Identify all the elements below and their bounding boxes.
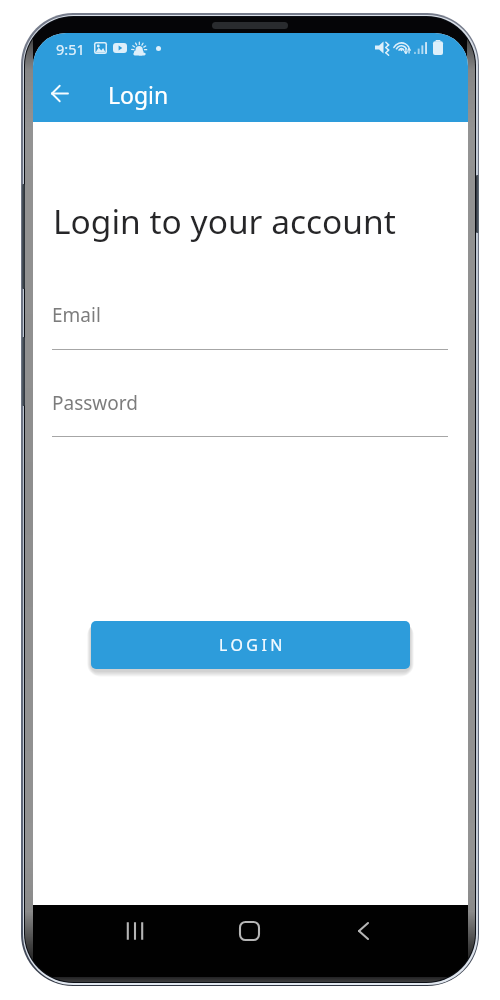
staticText: Login: [108, 79, 169, 110]
button[interactable]: Recent apps: [107, 905, 163, 957]
button[interactable]: Home: [221, 905, 277, 957]
button[interactable]: Back: [335, 905, 391, 957]
staticText: Password: [52, 390, 138, 416]
button[interactable]: Back: [37, 71, 82, 116]
staticText: Login to your account: [53, 198, 396, 244]
staticText: Email: [52, 302, 101, 328]
staticText: 9:51: [56, 39, 85, 59]
staticText: LOGIN: [219, 634, 286, 656]
button[interactable]: LOGIN: [91, 621, 410, 669]
